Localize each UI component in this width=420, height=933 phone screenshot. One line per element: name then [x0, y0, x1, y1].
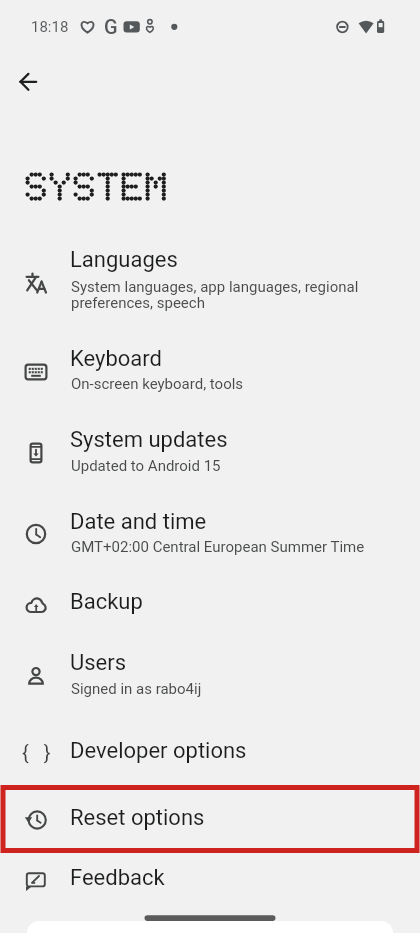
staticText: Languages	[70, 247, 178, 273]
staticText: Developer options	[70, 738, 247, 764]
staticText: 18:18	[31, 18, 69, 36]
staticText: GMT+02:00 Central European Summer Time	[71, 538, 365, 556]
staticText: Updated to Android 15	[71, 457, 221, 475]
staticText: Backup	[70, 589, 143, 615]
staticText: Date and time	[70, 509, 207, 535]
button[interactable]	[0, 418, 420, 488]
staticText: Keyboard	[70, 346, 162, 372]
staticText: Users	[70, 650, 127, 676]
staticText: Signed in as rabo4ij	[71, 680, 202, 698]
staticText: System updates	[70, 427, 228, 453]
button[interactable]	[0, 238, 420, 330]
staticText: { }	[22, 741, 56, 764]
button[interactable]	[0, 575, 420, 636]
button[interactable]	[0, 337, 420, 407]
button[interactable]	[0, 790, 420, 850]
button[interactable]	[0, 641, 420, 711]
button[interactable]	[0, 723, 420, 784]
staticText: G	[104, 15, 118, 38]
button[interactable]	[0, 499, 420, 569]
staticText: Reset options	[70, 805, 205, 831]
staticText: Feedback	[70, 865, 165, 891]
button[interactable]	[0, 851, 420, 911]
button[interactable]	[8, 68, 52, 112]
staticText: On-screen keyboard, tools	[71, 375, 244, 393]
staticText: System languages, app languages, regiona…	[71, 278, 359, 312]
